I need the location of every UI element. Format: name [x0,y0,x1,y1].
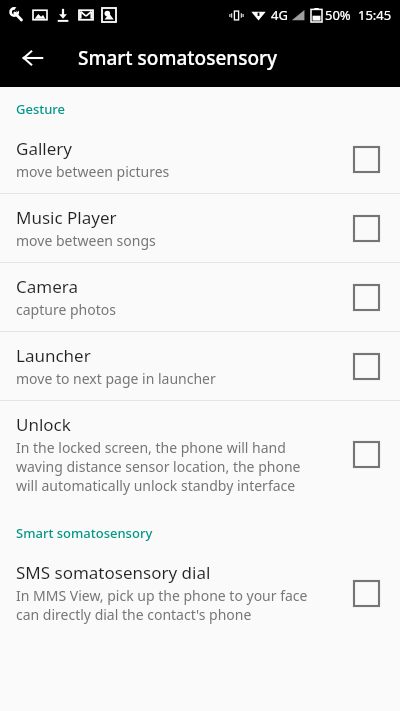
button[interactable]: Toggle checkbox [346,277,386,317]
button[interactable]: Toggle checkbox [346,208,386,248]
button[interactable]: Toggle checkbox [346,346,386,386]
staticText: In MMS View, pick up the phone to your f… [16,586,308,605]
staticText: move between pictures [16,162,170,181]
staticText: Smart somatosensory [78,45,278,71]
staticText: can directly dial the contact's phone [16,605,252,624]
staticText: Launcher [16,344,91,367]
staticText: SMS somatosensory dial [16,561,211,584]
button[interactable]: SMS somatosensory dial [0,549,400,636]
staticText: capture photos [16,300,116,319]
staticText: Smart somatosensory [16,524,153,542]
staticText: 15:45 [358,6,392,24]
staticText: Unlock [16,413,71,436]
staticText: move between songs [16,231,156,250]
button[interactable]: Music Player [0,194,400,262]
button[interactable]: Camera [0,263,400,331]
button[interactable]: Toggle checkbox [346,139,386,179]
button[interactable]: Back [10,35,56,81]
staticText: 50% [325,6,351,24]
button[interactable]: Gallery [0,125,400,193]
button[interactable]: Toggle checkbox [346,573,386,613]
staticText: waving distance sensor location, the pho… [16,457,301,476]
staticText: move to next page in launcher [16,369,216,388]
staticText: Gallery [16,137,72,160]
staticText: In the locked screen, the phone will han… [16,438,286,457]
button[interactable]: Toggle checkbox [346,434,386,474]
staticText: will automatically unlock standby interf… [16,476,296,495]
staticText: Camera [16,275,78,298]
staticText: 4G [271,6,288,24]
staticText: Gesture [16,100,66,118]
button[interactable]: Unlock [0,401,400,507]
staticText: Music Player [16,206,117,229]
button[interactable]: Launcher [0,332,400,400]
